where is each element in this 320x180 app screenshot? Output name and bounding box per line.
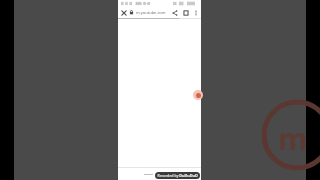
staticText: DuDuDuD (179, 173, 198, 178)
staticText: Recorded by (157, 173, 179, 178)
button[interactable]: m.youtube.com (129, 7, 169, 18)
button[interactable]: Close (118, 7, 129, 18)
button[interactable]: Tabs (180, 7, 191, 18)
button[interactable]: Share (169, 7, 180, 18)
staticText: m (278, 118, 308, 159)
staticText: m.youtube.com (136, 10, 166, 15)
button[interactable]: More options (191, 7, 201, 18)
button[interactable]: Home (144, 174, 153, 175)
